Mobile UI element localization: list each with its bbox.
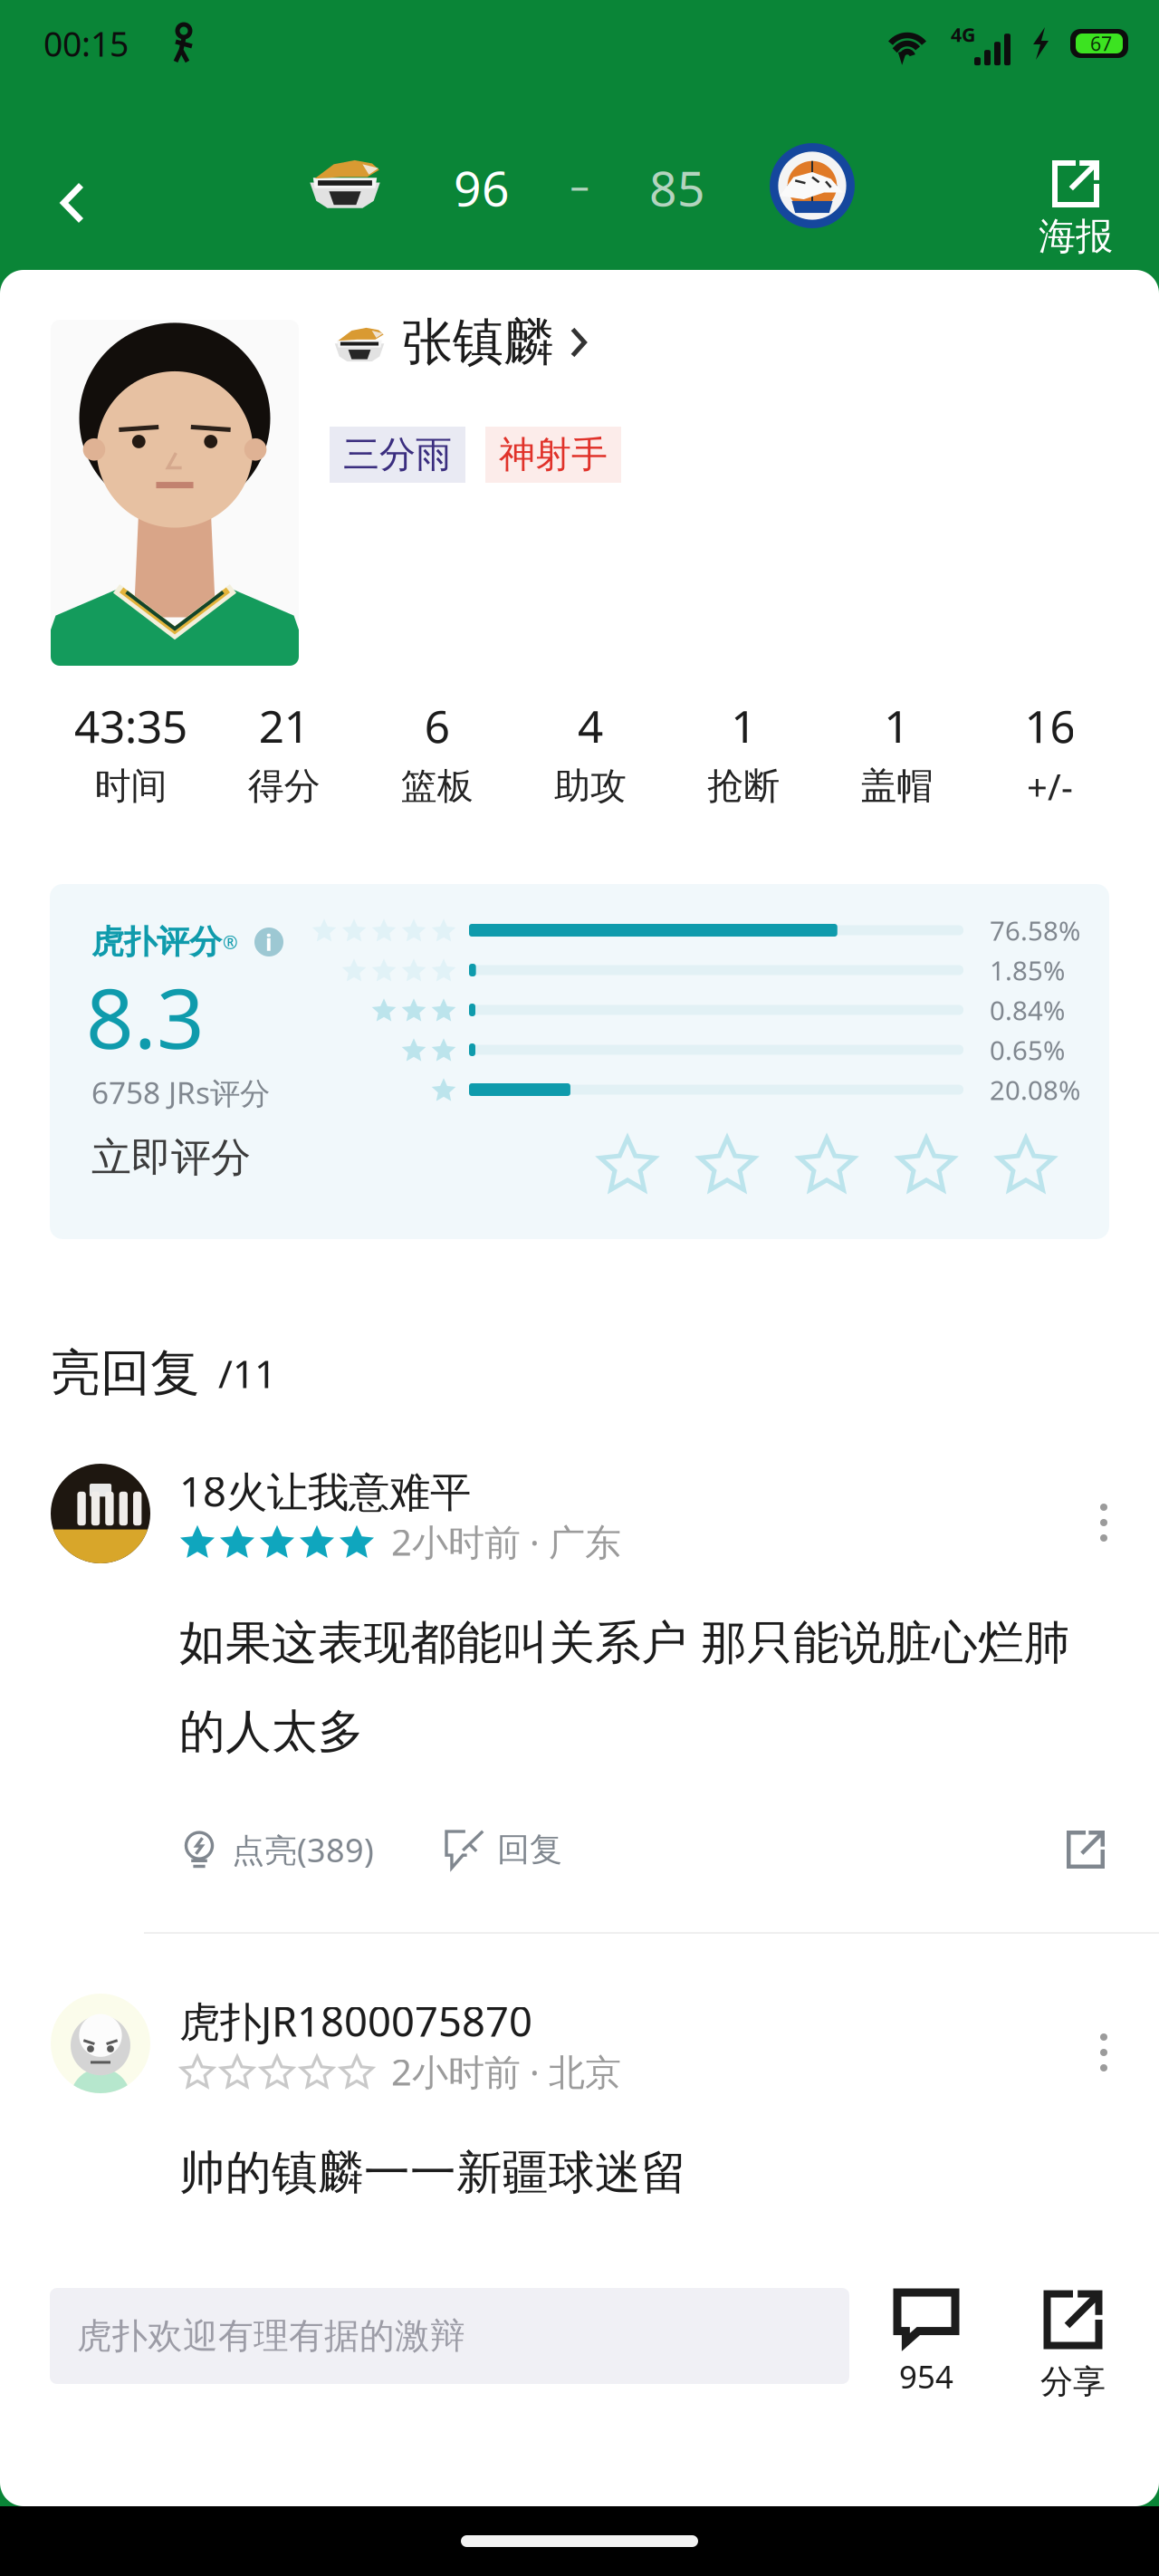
staticText: 21 (259, 696, 309, 755)
staticText: 的人太多 (179, 1704, 364, 1760)
staticText: 海报 (1039, 213, 1113, 259)
button[interactable]: 虎扑欢迎有理有据的激辩 (50, 2288, 849, 2384)
staticText: 6 (425, 696, 450, 755)
staticText: i (265, 927, 273, 957)
staticText: 立即评分 (91, 1133, 251, 1182)
staticText: 帅的镇麟一一新疆球迷留 (179, 2145, 687, 2201)
staticText: /11 (218, 1348, 276, 1399)
staticText: – (570, 159, 589, 211)
staticText: 助攻 (554, 764, 627, 808)
staticText: 虎扑评分 (91, 922, 222, 962)
staticText: ® (223, 930, 238, 954)
button[interactable]: 更多 (1082, 2023, 1125, 2082)
staticText: 如果这表现都能叫关系户 那只能说脏心烂肺 (179, 1615, 1070, 1671)
staticText: 1 (884, 696, 909, 755)
button[interactable]: 分享 (1023, 2283, 1123, 2409)
staticText: 分享 (1040, 2362, 1106, 2402)
staticText: 1.85% (990, 952, 1065, 988)
button[interactable]: 立即评分 (597, 1125, 1057, 1203)
button[interactable]: 张镇麟 (331, 306, 587, 379)
staticText: 三分雨 (343, 432, 452, 477)
staticText: 0.65% (990, 1032, 1065, 1067)
staticText: 2小时前 · 北京 (391, 2047, 621, 2095)
staticText: 76.58% (990, 913, 1080, 948)
button[interactable]: 分享 (1057, 1821, 1115, 1879)
staticText: 85 (649, 155, 705, 220)
staticText: 16 (1024, 696, 1075, 755)
staticText: 2小时前 · 广东 (391, 1518, 621, 1566)
staticText: 亮回复 (51, 1343, 200, 1403)
button[interactable]: 回复 (445, 1821, 562, 1879)
staticText: 00:15 (43, 21, 129, 66)
staticText: 点亮(389) (232, 1828, 374, 1871)
staticText: 4G (951, 22, 975, 47)
staticText: 954 (899, 2355, 953, 2397)
staticText: 篮板 (401, 764, 473, 808)
button[interactable]: 954 (876, 2279, 976, 2406)
staticText: 6758 JRs评分 (91, 1072, 270, 1112)
staticText: 虎扑欢迎有理有据的激辩 (77, 2315, 465, 2358)
button[interactable]: 点亮(389) (179, 1821, 374, 1879)
staticText: 神射手 (499, 432, 608, 477)
staticText: 时间 (95, 764, 167, 808)
staticText: 67 (1090, 31, 1112, 56)
staticText: +/- (1027, 762, 1073, 810)
button[interactable]: 返回 (18, 149, 127, 257)
button[interactable]: 更多 (1082, 1493, 1125, 1552)
staticText: 4 (578, 696, 603, 755)
staticText: 抢断 (707, 764, 780, 808)
button[interactable]: 海报 (1003, 150, 1148, 270)
staticText: 8.3 (86, 961, 205, 1072)
staticText: 18火让我意难平 (179, 1464, 471, 1518)
staticText: 96 (454, 155, 510, 220)
staticText: 盖帽 (860, 764, 933, 808)
button[interactable]: 立即评分 (91, 1132, 251, 1183)
staticText: 0.84% (990, 992, 1065, 1028)
staticText: 20.08% (990, 1072, 1080, 1107)
staticText: 43:35 (74, 696, 188, 755)
staticText: 回复 (497, 1830, 562, 1870)
staticText: 张镇麟 (402, 311, 554, 374)
staticText: 得分 (248, 764, 320, 808)
staticText: 虎扑JR1800075870 (179, 1994, 532, 2048)
staticText: 1 (731, 696, 756, 755)
